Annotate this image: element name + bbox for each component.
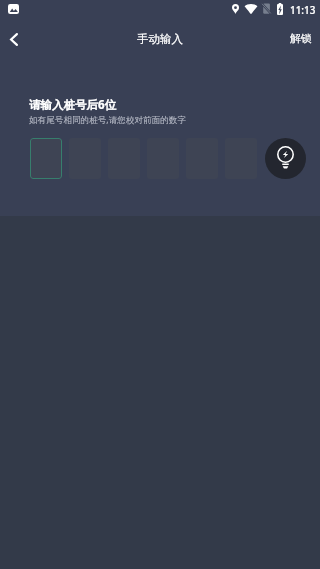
staticText: 请输入桩号后6位 — [29, 97, 117, 113]
button[interactable]: 第 1 位 — [30, 138, 62, 179]
staticText: 手动输入 — [137, 32, 183, 46]
button[interactable]: 解锁 — [278, 19, 320, 59]
button[interactable]: 手电筒 — [265, 138, 306, 179]
button[interactable]: Back — [0, 19, 36, 59]
staticText: 解锁 — [290, 32, 312, 46]
staticText: 如有尾号相同的桩号,请您校对前面的数字 — [29, 114, 186, 126]
staticText: 11:13 — [290, 3, 316, 16]
